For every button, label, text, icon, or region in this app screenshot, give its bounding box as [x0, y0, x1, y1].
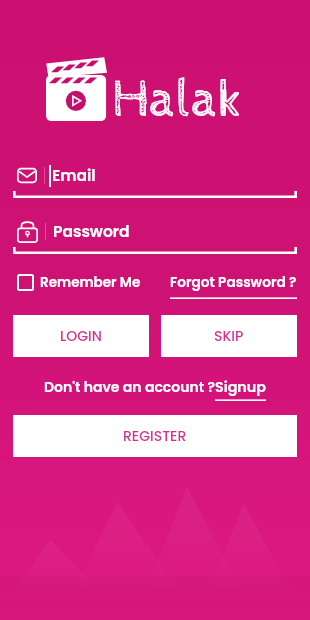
other: Email	[17, 167, 37, 184]
other: Halak logo	[46, 57, 107, 121]
button[interactable]: REGISTER	[13, 415, 297, 457]
button[interactable]: Signup	[215, 377, 266, 401]
staticText: LOGIN	[60, 326, 102, 346]
button[interactable]: LOGIN	[13, 315, 149, 357]
staticText: Password	[53, 221, 130, 243]
staticText: Forgot Password ?	[170, 273, 297, 292]
staticText: SKIP	[214, 326, 244, 346]
button[interactable]: Remember Me checkbox	[17, 273, 141, 292]
other: Password	[17, 221, 38, 243]
button[interactable]: SKIP	[161, 315, 297, 357]
staticText: Signup	[215, 377, 266, 397]
staticText: REGISTER	[123, 426, 187, 446]
staticText: Remember Me	[40, 273, 141, 292]
staticText: Email	[52, 165, 96, 187]
staticText: Halak	[112, 69, 244, 131]
button[interactable]: Forgot Password ?	[170, 273, 297, 299]
other: Remember Me checkbox	[17, 274, 34, 291]
staticText: Don't have an account ?	[44, 377, 215, 397]
